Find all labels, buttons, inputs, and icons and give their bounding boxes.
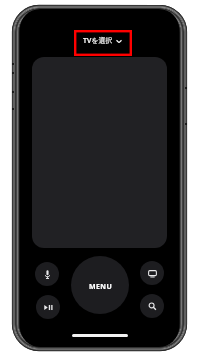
button[interactable]: TVを選択 <box>83 34 122 48</box>
staticText: MENU <box>89 282 113 292</box>
staticText: TVを選択 <box>83 36 113 46</box>
button[interactable]: Search <box>140 294 164 318</box>
button[interactable]: MENU <box>71 256 129 314</box>
button[interactable]: Siri voice <box>35 262 59 286</box>
button[interactable]: TV app <box>140 261 164 285</box>
button[interactable]: Play or pause <box>36 295 60 319</box>
